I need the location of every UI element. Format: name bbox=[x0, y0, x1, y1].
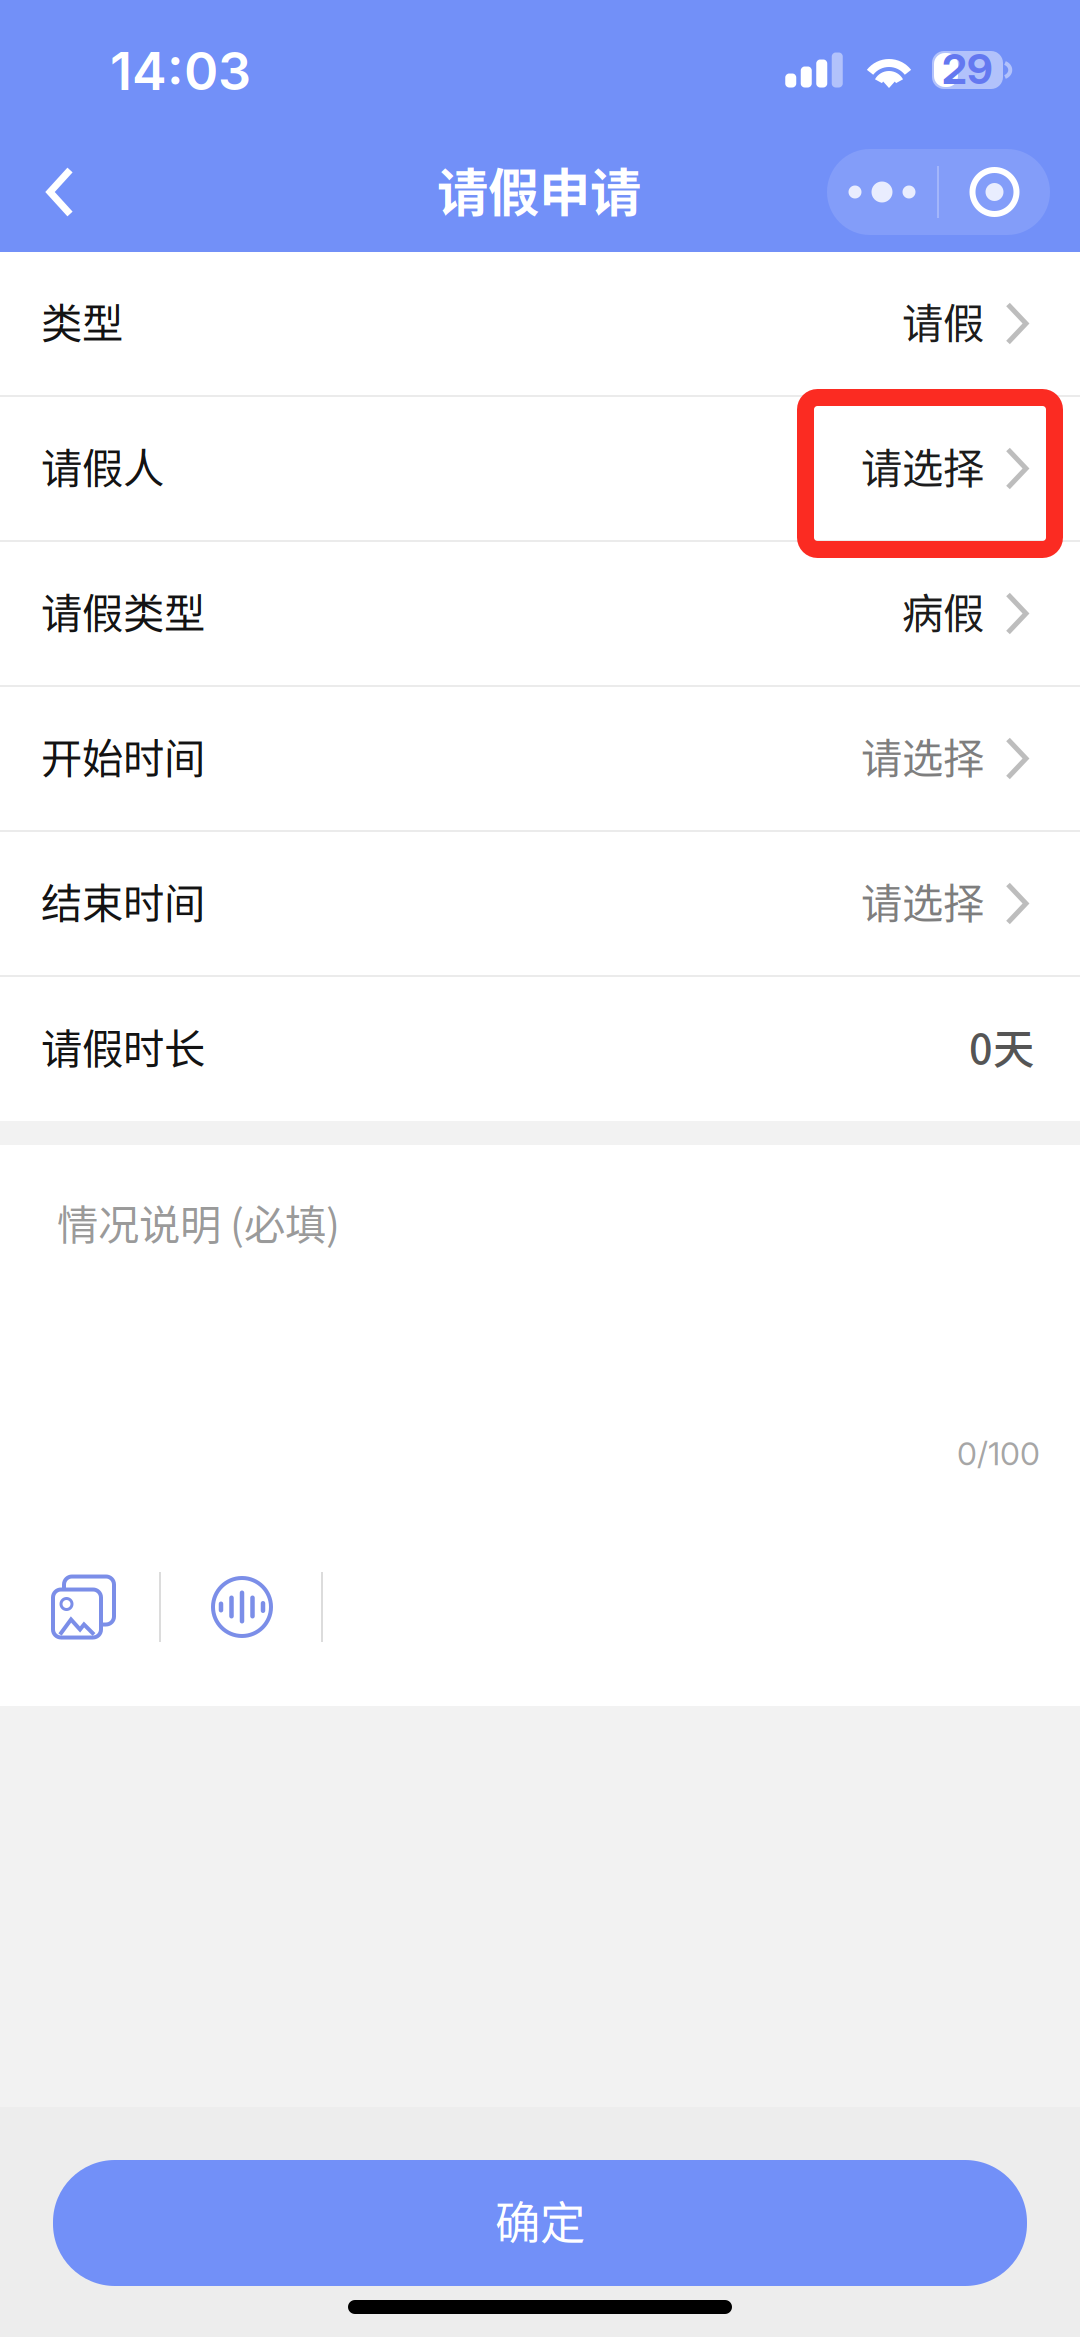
staticText: 0天 bbox=[969, 1016, 1034, 1076]
button[interactable]: Add photo bbox=[53, 1576, 114, 1637]
button[interactable]: More options bbox=[827, 149, 1050, 235]
button[interactable]: 结束时间 bbox=[0, 832, 1080, 977]
button[interactable]: Record voice bbox=[213, 1578, 271, 1636]
button[interactable]: 开始时间 bbox=[0, 687, 1080, 832]
staticText: 请假申请 bbox=[437, 152, 641, 226]
staticText: 请选择 bbox=[861, 871, 984, 930]
button[interactable]: 请假时长 bbox=[0, 977, 1080, 1121]
button[interactable]: 确定 bbox=[53, 2160, 1027, 2286]
staticText: 请选择 bbox=[861, 726, 984, 785]
staticText: 29 bbox=[942, 44, 993, 94]
button[interactable]: 请假类型 bbox=[0, 542, 1080, 687]
staticText: 请假时长 bbox=[41, 1016, 205, 1076]
staticText: 0/100 bbox=[957, 1434, 1040, 1473]
button[interactable]: 请假人 bbox=[0, 397, 1080, 542]
staticText: 情况说明 (必填) bbox=[57, 1192, 340, 1252]
staticText: 请假人 bbox=[41, 436, 164, 495]
staticText: 请选择 bbox=[861, 436, 984, 495]
staticText: 确定 bbox=[495, 2187, 585, 2253]
staticText: 14:03 bbox=[110, 39, 251, 102]
button[interactable]: 类型 bbox=[0, 252, 1080, 397]
button[interactable]: Back bbox=[0, 137, 120, 247]
staticText: 病假 bbox=[902, 581, 984, 640]
staticText: 类型 bbox=[41, 291, 123, 350]
staticText: 请假 bbox=[902, 291, 984, 350]
staticText: 开始时间 bbox=[41, 726, 205, 785]
staticText: 请假类型 bbox=[41, 581, 205, 640]
staticText: 结束时间 bbox=[41, 871, 205, 930]
